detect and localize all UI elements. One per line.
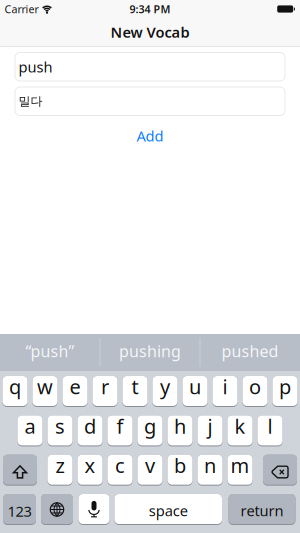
button[interactable]: a [17, 415, 42, 446]
button[interactable]: m [227, 455, 252, 486]
button[interactable]: l [257, 415, 282, 446]
staticText: y [160, 373, 170, 400]
staticText: f [116, 413, 123, 439]
staticText: s [55, 413, 65, 439]
staticText: Carrier [4, 2, 38, 16]
button[interactable]: Dictate [78, 494, 109, 525]
staticText: l [267, 413, 272, 439]
button[interactable]: h [167, 415, 192, 446]
staticText: c [115, 452, 125, 478]
button[interactable]: Shift [3, 455, 37, 486]
staticText: v [145, 452, 155, 478]
button[interactable]: Add [128, 124, 171, 147]
staticText: o [249, 373, 261, 400]
staticText: return [240, 501, 283, 520]
button[interactable]: c [107, 455, 132, 486]
button[interactable]: x [77, 455, 102, 486]
button[interactable]: f [107, 415, 132, 446]
button[interactable]: d [77, 415, 102, 446]
staticText: k [234, 413, 245, 439]
button[interactable]: 123 [3, 494, 36, 525]
button[interactable]: r [92, 376, 117, 407]
button[interactable]: i [212, 376, 237, 407]
button[interactable]: u [182, 376, 207, 407]
button[interactable]: q [2, 376, 27, 407]
staticText: Add [136, 126, 163, 145]
staticText: w [37, 373, 53, 400]
staticText: 밀다 [18, 94, 42, 109]
button[interactable]: j [197, 415, 222, 446]
button[interactable]: pushed [200, 334, 300, 371]
staticText: b [174, 452, 186, 478]
staticText: pushed [221, 340, 278, 362]
staticText: z [55, 452, 64, 478]
staticText: “push” [25, 340, 74, 362]
button[interactable]: p [272, 376, 297, 407]
button[interactable]: k [227, 415, 252, 446]
staticText: 123 [7, 501, 31, 521]
staticText: q [9, 373, 21, 400]
staticText: m [230, 452, 249, 478]
staticText: d [84, 413, 96, 439]
button[interactable]: s [47, 415, 72, 446]
staticText: u [189, 373, 201, 400]
staticText: e [69, 373, 80, 400]
staticText: pushing [119, 340, 181, 362]
button[interactable]: v [137, 455, 162, 486]
button[interactable]: return [228, 494, 295, 525]
staticText: push [18, 57, 52, 76]
button[interactable]: g [137, 415, 162, 446]
button[interactable]: b [167, 455, 192, 486]
staticText: t [131, 373, 138, 400]
staticText: a [24, 413, 35, 439]
staticText: 9:34 PM [129, 2, 170, 16]
button[interactable]: e [62, 376, 87, 407]
button[interactable]: Delete [263, 455, 297, 486]
button[interactable]: z [47, 455, 72, 486]
staticText: h [174, 413, 186, 439]
staticText: space [149, 501, 188, 520]
button[interactable]: Next keyboard [41, 494, 73, 525]
staticText: x [84, 452, 95, 478]
staticText: i [222, 373, 227, 400]
button[interactable]: space [114, 494, 222, 525]
staticText: r [101, 373, 109, 400]
button[interactable]: “push” [0, 334, 100, 371]
button[interactable]: 밀다 [15, 87, 285, 115]
button[interactable]: o [242, 376, 267, 407]
staticText: p [279, 373, 291, 400]
button[interactable]: t [122, 376, 147, 407]
button[interactable]: y [152, 376, 177, 407]
staticText: g [144, 413, 156, 439]
staticText: New Vocab [110, 22, 189, 42]
button[interactable]: w [32, 376, 57, 407]
staticText: j [207, 413, 212, 439]
button[interactable]: push [15, 52, 285, 81]
staticText: n [204, 452, 216, 478]
button[interactable]: pushing [100, 334, 200, 371]
button[interactable]: n [197, 455, 222, 486]
